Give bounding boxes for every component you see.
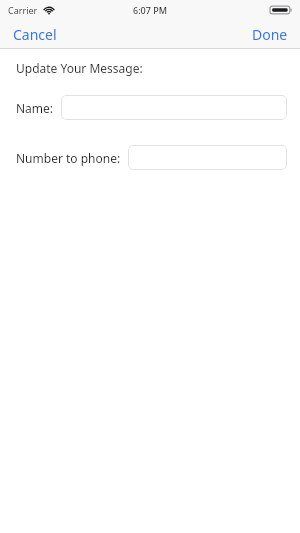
button[interactable]: Done [240,21,300,48]
staticText: Number to phone: [16,150,121,166]
staticText: Cancel [13,25,57,44]
staticText: Done [252,25,288,44]
button[interactable]: Name input field [61,95,287,120]
staticText: Update Your Message: [16,60,143,76]
staticText: Name: [16,100,54,116]
staticText: 6:07 PM [133,4,167,16]
button[interactable]: Cancel [0,21,70,48]
staticText: Carrier [8,4,38,16]
button[interactable]: Number to phone input field [128,145,287,170]
